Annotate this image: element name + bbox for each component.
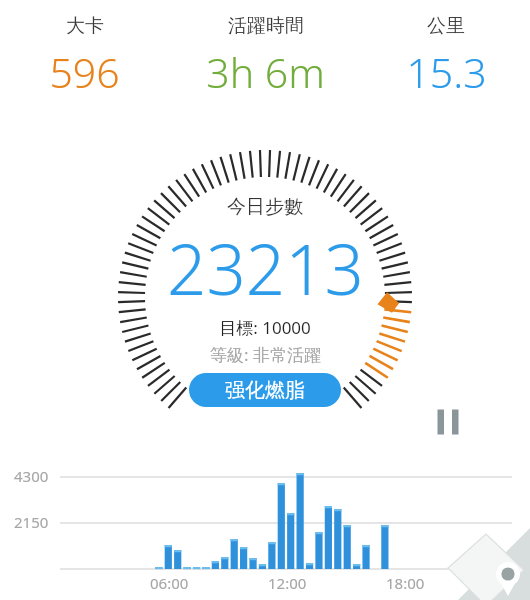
staticText: 15.3 bbox=[406, 44, 487, 100]
staticText: 公里 bbox=[427, 14, 465, 38]
button[interactable]: 强化燃脂 bbox=[189, 373, 341, 407]
staticText: 06:00 bbox=[150, 573, 189, 593]
button[interactable]: 公里 bbox=[362, 0, 530, 100]
button[interactable]: 大卡 bbox=[0, 0, 169, 100]
staticText: 23213 bbox=[167, 221, 364, 315]
staticText: 18:00 bbox=[386, 573, 425, 593]
staticText: 大卡 bbox=[66, 14, 104, 38]
staticText: 活躍時間 bbox=[228, 14, 304, 38]
staticText: 3h 6m bbox=[206, 44, 325, 100]
staticText: 今日步數 bbox=[227, 195, 303, 219]
staticText: 等級: 非常活躍 bbox=[210, 343, 321, 366]
staticText: 4300 bbox=[14, 466, 49, 486]
staticText: 12:00 bbox=[268, 573, 307, 593]
button[interactable]: 活躍時間 bbox=[169, 0, 362, 100]
button[interactable]: Pause bbox=[433, 409, 463, 435]
staticText: 596 bbox=[49, 44, 120, 100]
staticText: 强化燃脂 bbox=[225, 378, 305, 403]
staticText: 2150 bbox=[14, 512, 49, 532]
staticText: 目標: 10000 bbox=[219, 316, 311, 339]
